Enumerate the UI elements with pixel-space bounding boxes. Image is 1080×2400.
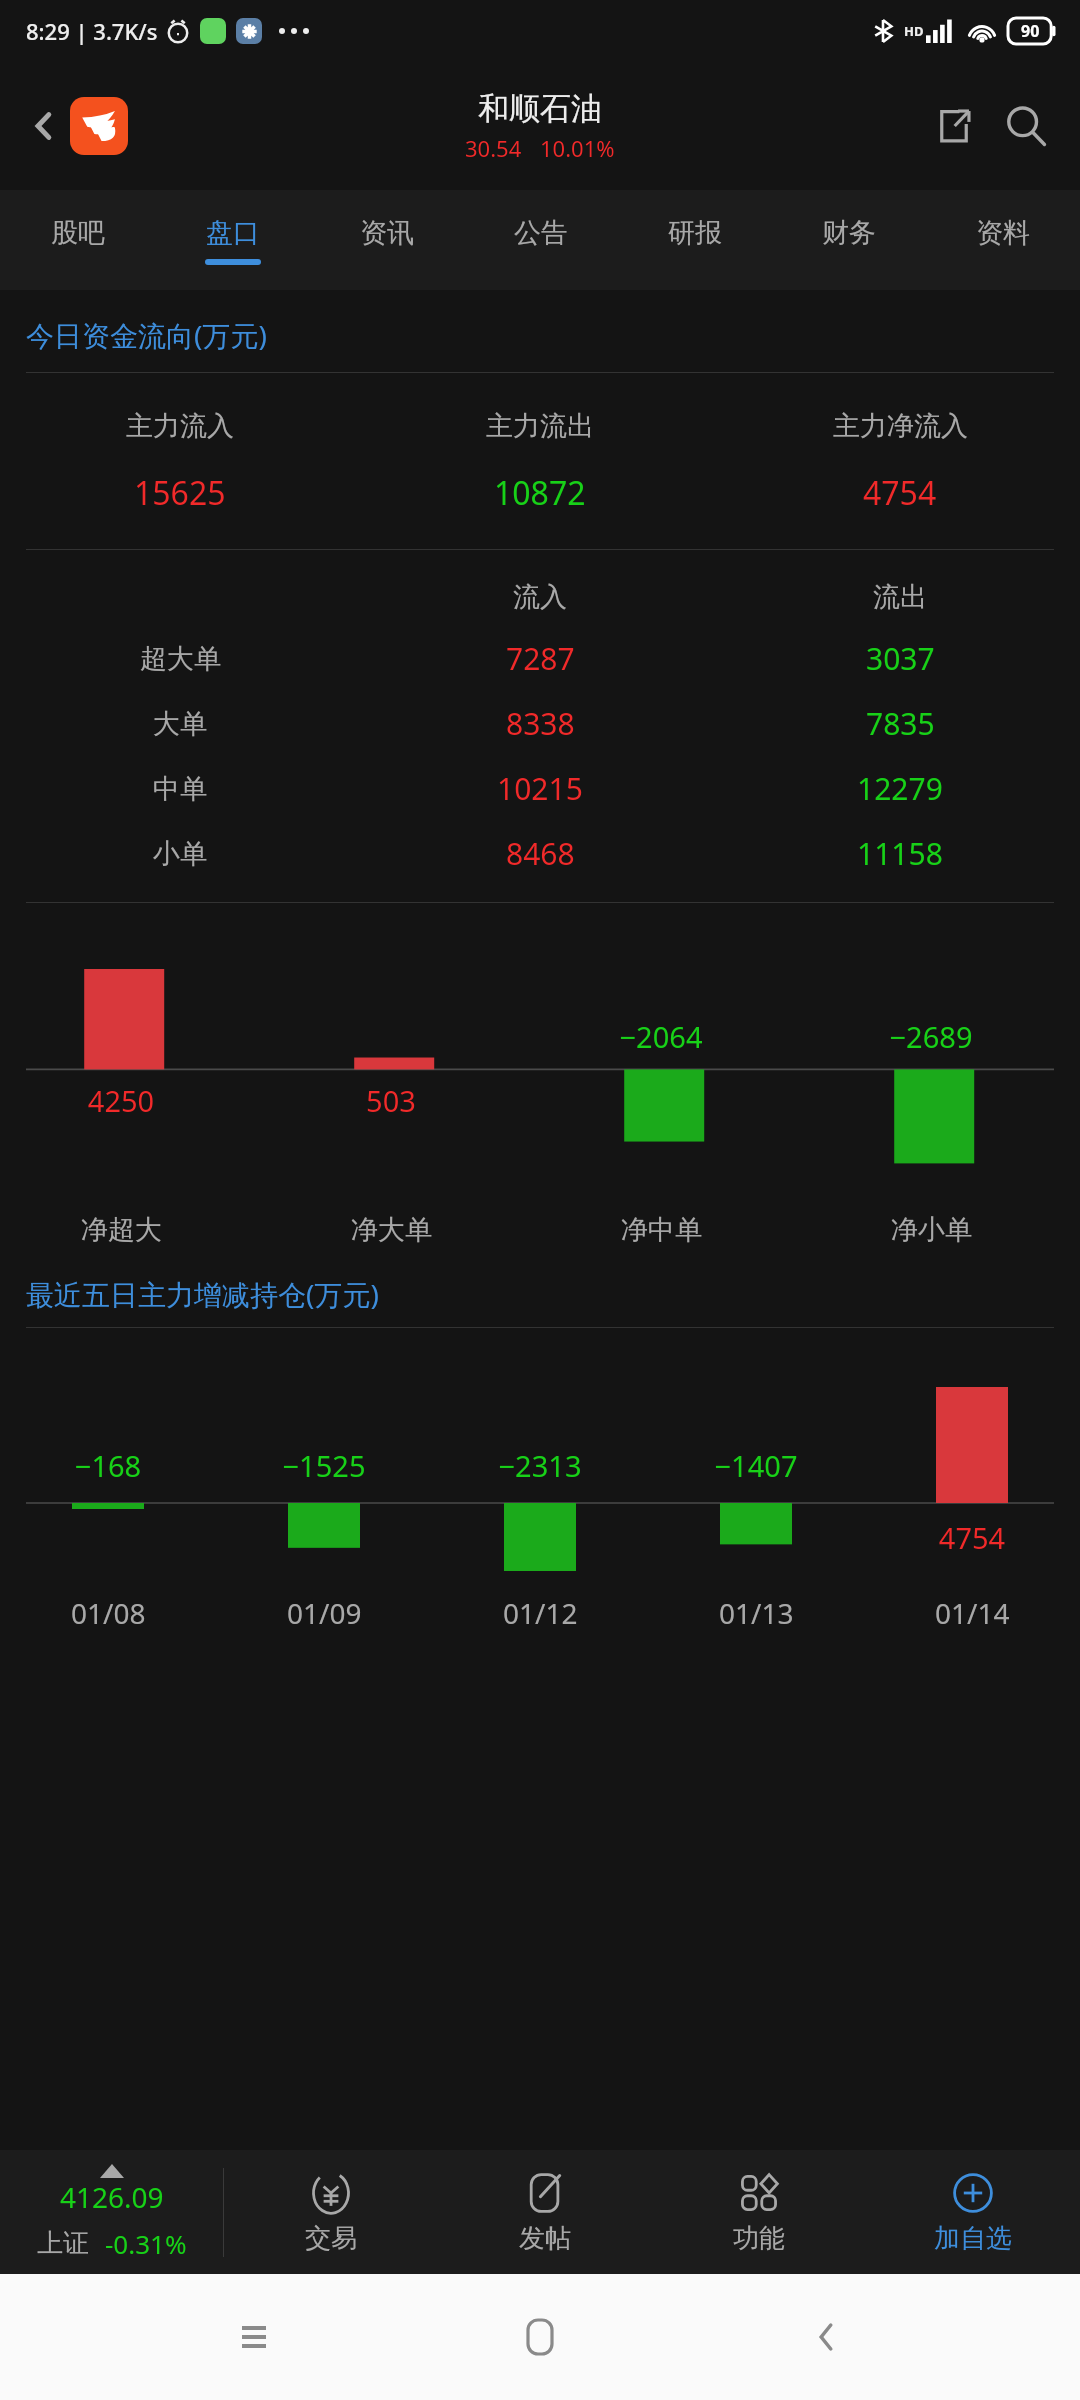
button[interactable]: 公告 bbox=[464, 190, 618, 290]
staticText: −1407 bbox=[648, 1446, 864, 1485]
button[interactable]: Back bbox=[22, 104, 66, 148]
staticText: -0.31% bbox=[105, 2226, 187, 2261]
staticText: 交易 bbox=[305, 2222, 357, 2255]
button[interactable]: 交易 bbox=[224, 2150, 438, 2274]
button[interactable]: App logo bbox=[70, 97, 128, 155]
staticText: 4754 bbox=[864, 1518, 1080, 1557]
staticText: 净超大 bbox=[81, 1213, 162, 1247]
staticText: 流出 bbox=[873, 580, 927, 614]
staticText: 503 bbox=[256, 1081, 526, 1120]
staticText: 01/14 bbox=[935, 1594, 1010, 1632]
staticText: 净小单 bbox=[891, 1213, 972, 1247]
staticText: 30.54 bbox=[465, 133, 522, 163]
staticText: 4126.09 bbox=[60, 2178, 164, 2216]
staticText: 4250 bbox=[0, 1081, 256, 1120]
staticText: 和顺石油 bbox=[478, 89, 602, 128]
staticText: 净中单 bbox=[621, 1213, 702, 1247]
button[interactable]: 加自选 bbox=[866, 2150, 1080, 2274]
staticText: −2689 bbox=[796, 1017, 1066, 1056]
staticText: 12279 bbox=[857, 768, 943, 809]
staticText: 主力净流入 bbox=[833, 409, 968, 443]
staticText: 10.01% bbox=[540, 133, 615, 163]
staticText: 财务 bbox=[822, 216, 876, 250]
staticText: 主力流入 bbox=[126, 409, 234, 443]
staticText: 上证 bbox=[37, 2227, 89, 2260]
staticText: 主力流出 bbox=[486, 409, 594, 443]
staticText: 今日资金流向(万元) bbox=[26, 316, 267, 354]
staticText: 超大单 bbox=[140, 642, 221, 676]
staticText: 8338 bbox=[506, 703, 575, 744]
button[interactable]: 研报 bbox=[618, 190, 772, 290]
staticText: −168 bbox=[0, 1446, 216, 1485]
staticText: 最近五日主力增减持仓(万元) bbox=[26, 1275, 379, 1313]
staticText: 01/09 bbox=[287, 1594, 362, 1632]
button[interactable]: 财务 bbox=[772, 190, 926, 290]
staticText: 01/13 bbox=[719, 1594, 794, 1632]
staticText: 90 bbox=[1021, 20, 1040, 42]
staticText: 10215 bbox=[497, 768, 583, 809]
button[interactable]: Recents bbox=[222, 2305, 286, 2369]
staticText: 3037 bbox=[866, 638, 935, 679]
staticText: 股吧 bbox=[51, 216, 105, 250]
staticText: 研报 bbox=[668, 216, 722, 250]
staticText: −2313 bbox=[432, 1446, 648, 1485]
button[interactable]: 功能 bbox=[652, 2150, 866, 2274]
staticText: 15625 bbox=[134, 471, 226, 515]
staticText: 加自选 bbox=[934, 2222, 1012, 2255]
button[interactable]: Home bbox=[508, 2305, 572, 2369]
button[interactable]: Share bbox=[926, 98, 982, 154]
button[interactable]: Back bbox=[794, 2305, 858, 2369]
staticText: 01/08 bbox=[71, 1594, 146, 1632]
staticText: 11158 bbox=[857, 833, 943, 874]
button[interactable]: Search bbox=[996, 96, 1056, 156]
staticText: 7835 bbox=[866, 703, 935, 744]
staticText: 4754 bbox=[863, 471, 937, 515]
staticText: 10872 bbox=[494, 471, 586, 515]
staticText: 净大单 bbox=[351, 1213, 432, 1247]
staticText: 盘口 bbox=[206, 216, 260, 250]
staticText: 资讯 bbox=[360, 216, 414, 250]
staticText: 01/12 bbox=[503, 1594, 578, 1632]
staticText: 流入 bbox=[513, 580, 567, 614]
button[interactable]: 资讯 bbox=[310, 190, 464, 290]
staticText: 公告 bbox=[514, 216, 568, 250]
staticText: 功能 bbox=[733, 2222, 785, 2255]
button[interactable]: 4126.09 bbox=[0, 2150, 224, 2274]
button[interactable]: 资料 bbox=[926, 190, 1080, 290]
staticText: HD bbox=[904, 22, 924, 40]
staticText: −2064 bbox=[526, 1017, 796, 1056]
button[interactable]: 股吧 bbox=[0, 190, 155, 290]
staticText: −1525 bbox=[216, 1446, 432, 1485]
staticText: 8468 bbox=[506, 833, 575, 874]
staticText: 大单 bbox=[153, 707, 207, 741]
staticText: 7287 bbox=[506, 638, 575, 679]
button[interactable]: 盘口 bbox=[155, 190, 310, 290]
staticText: 8:29 | 3.7K/s bbox=[26, 16, 158, 46]
staticText: 中单 bbox=[153, 772, 207, 806]
staticText: 资料 bbox=[976, 216, 1030, 250]
staticText: 发帖 bbox=[519, 2222, 571, 2255]
button[interactable]: 发帖 bbox=[438, 2150, 652, 2274]
staticText: 小单 bbox=[153, 837, 207, 871]
